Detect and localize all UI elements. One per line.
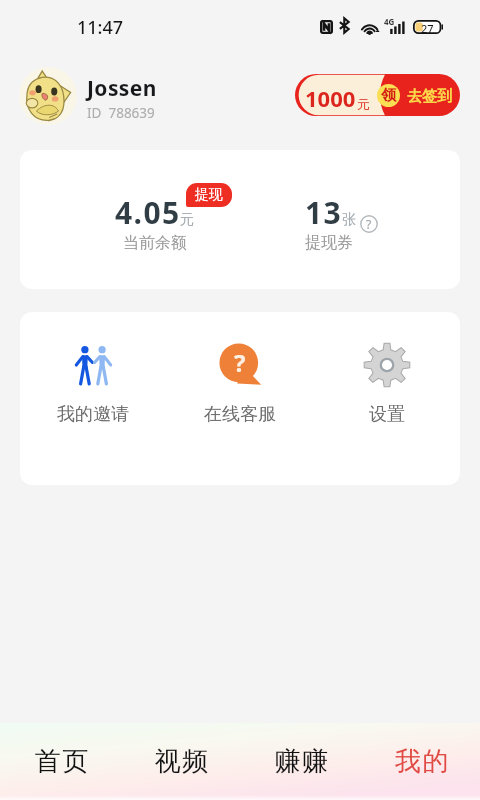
- staticText: 我的: [394, 745, 449, 778]
- button[interactable]: Avatar: [19, 67, 77, 125]
- button[interactable]: ?: [166, 338, 313, 430]
- staticText: 1000: [305, 83, 356, 113]
- button[interactable]: 赚赚: [240, 723, 360, 800]
- staticText: 4G: [384, 16, 395, 27]
- staticText: 张: [342, 211, 356, 229]
- staticText: 元: [357, 96, 370, 112]
- staticText: 去签到: [407, 87, 452, 106]
- staticText: Jossen: [87, 74, 157, 103]
- staticText: ID 788639: [87, 104, 155, 122]
- staticText: 赚赚: [274, 745, 329, 778]
- button[interactable]: 4.05: [75, 192, 235, 253]
- staticText: 首页: [34, 745, 89, 778]
- staticText: 在线客服: [204, 403, 276, 426]
- button[interactable]: 首页: [0, 723, 120, 800]
- staticText: 设置: [369, 403, 405, 426]
- staticText: 13: [305, 192, 343, 233]
- staticText: 当前余额: [123, 233, 187, 253]
- staticText: 我的邀请: [57, 403, 129, 426]
- button[interactable]: 提现: [186, 183, 232, 207]
- button[interactable]: 13: [305, 192, 375, 253]
- staticText: ?: [366, 216, 372, 232]
- staticText: 27: [421, 21, 434, 36]
- button[interactable]: 1000: [295, 74, 460, 116]
- staticText: 11:47: [77, 15, 124, 40]
- staticText: 提现: [195, 186, 223, 204]
- button[interactable]: 我的邀请: [20, 338, 166, 430]
- staticText: 提现券: [305, 233, 353, 253]
- button[interactable]: 设置: [313, 338, 460, 430]
- staticText: ?: [234, 346, 246, 379]
- staticText: 元: [180, 211, 194, 229]
- button[interactable]: 视频: [120, 723, 240, 800]
- staticText: 领: [381, 86, 396, 105]
- staticText: 4.05: [115, 192, 181, 233]
- button[interactable]: 我的: [360, 723, 480, 800]
- staticText: 视频: [154, 745, 209, 778]
